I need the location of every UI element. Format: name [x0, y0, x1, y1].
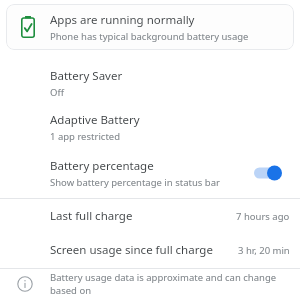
staticText: 1 app restricted	[50, 130, 121, 143]
staticText: Last full charge	[50, 208, 133, 224]
button[interactable]: Battery Saver	[0, 62, 300, 104]
staticText: Battery Saver	[50, 68, 123, 84]
staticText: 3 hr, 20 min	[238, 244, 290, 257]
staticText: Screen usage since full charge	[50, 242, 213, 258]
other: Battery status	[21, 16, 35, 38]
staticText: Show battery percentage in status bar	[50, 176, 220, 189]
button[interactable]: Battery percentage toggle	[254, 162, 288, 184]
staticText: Off	[50, 86, 64, 99]
staticText: Adaptive Battery	[50, 112, 140, 128]
button[interactable]: Last full charge	[0, 199, 300, 233]
button[interactable]: Adaptive Battery	[0, 104, 300, 150]
button[interactable]: Battery status	[6, 4, 294, 50]
staticText: 7 hours ago	[236, 210, 290, 223]
staticText: Apps are running normally	[50, 12, 195, 28]
staticText: Battery usage data is approximate and ca…	[50, 271, 300, 297]
staticText: Battery percentage	[50, 158, 154, 174]
button[interactable]: Screen usage since full charge	[0, 233, 300, 267]
other: Information	[17, 276, 33, 292]
staticText: Phone has typical background battery usa…	[50, 30, 249, 43]
button[interactable]: Battery percentage	[0, 150, 300, 196]
